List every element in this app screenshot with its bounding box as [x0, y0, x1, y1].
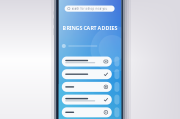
button[interactable] [62, 95, 112, 105]
staticText: BRINGS CART ADDIES [62, 24, 117, 32]
button[interactable] [62, 107, 112, 117]
button[interactable] [62, 82, 112, 92]
button[interactable]: Search for a shop near you [65, 5, 115, 12]
staticText: Search for a shop near you [71, 7, 107, 10]
button[interactable] [62, 69, 112, 79]
button[interactable] [62, 56, 112, 66]
